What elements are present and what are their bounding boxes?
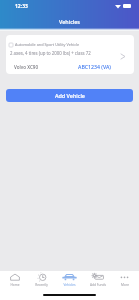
staticText: Add Funds xyxy=(90,283,106,287)
button[interactable]: Home xyxy=(1,273,28,287)
button[interactable]: Recently xyxy=(28,273,55,287)
staticText: Automobile and Sport Utility Vehicle xyxy=(15,42,80,47)
staticText: Recently xyxy=(35,283,48,287)
button[interactable]: Automobile and Sport Utility Vehicle xyxy=(6,35,134,74)
other: Open vehicle details xyxy=(121,54,125,59)
staticText: More xyxy=(121,283,129,287)
button[interactable]: More xyxy=(111,273,138,287)
staticText: Home xyxy=(10,283,20,287)
staticText: 12:33 xyxy=(15,3,28,10)
button[interactable]: Vehicles xyxy=(56,273,83,287)
staticText: 2 axes, 4 tires (up to 2000 lbs) + class… xyxy=(10,50,91,56)
staticText: Vehicles xyxy=(59,18,80,25)
staticText: Add Vehicle xyxy=(55,92,85,99)
button[interactable]: Add Vehicle xyxy=(6,89,133,102)
button[interactable]: Add Funds xyxy=(84,273,111,287)
staticText: Vehicles xyxy=(63,283,76,287)
staticText: ABC1234 (VA) xyxy=(78,63,111,70)
staticText: Volvo XC90 xyxy=(14,64,39,70)
